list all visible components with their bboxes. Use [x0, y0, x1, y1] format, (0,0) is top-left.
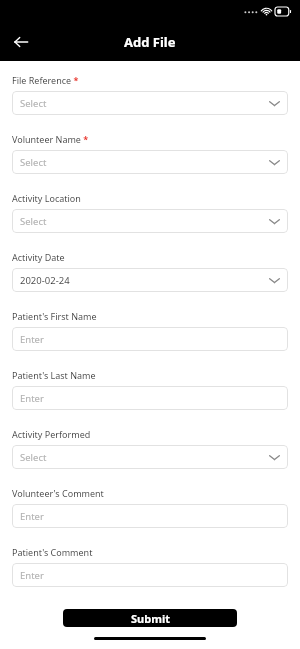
staticText: Enter [20, 569, 280, 582]
staticText: Enter [20, 333, 280, 346]
staticText: Activity Location [12, 192, 81, 204]
staticText: Select [20, 215, 269, 228]
button[interactable]: Select [12, 91, 288, 115]
staticText: 2020-02-24 [20, 274, 269, 287]
staticText: Activity Date [12, 251, 65, 263]
staticText: Select [20, 451, 269, 464]
button[interactable]: Enter [12, 327, 288, 351]
button[interactable]: Select [12, 150, 288, 174]
button[interactable]: Back [6, 27, 36, 57]
button[interactable]: Select [12, 445, 288, 469]
staticText: Patient's Last Name [12, 369, 96, 381]
staticText: Volunteer's Comment [12, 487, 104, 499]
staticText: Patient's First Name [12, 310, 97, 322]
staticText: Enter [20, 510, 280, 523]
button[interactable]: Submit [63, 609, 237, 627]
button[interactable]: Enter [12, 386, 288, 410]
staticText: Add File [124, 33, 176, 51]
staticText: Volunteer Name * [12, 133, 89, 145]
button[interactable]: Select [12, 209, 288, 233]
button[interactable]: Enter [12, 563, 288, 587]
staticText: Select [20, 97, 269, 110]
staticText: Enter [20, 392, 280, 405]
staticText: File Reference * [12, 74, 79, 86]
staticText: Activity Performed [12, 428, 91, 440]
button[interactable]: 2020-02-24 [12, 268, 288, 292]
staticText: Submit [131, 611, 170, 626]
staticText: Patient's Comment [12, 546, 93, 558]
button[interactable]: Enter [12, 504, 288, 528]
staticText: Select [20, 156, 269, 169]
